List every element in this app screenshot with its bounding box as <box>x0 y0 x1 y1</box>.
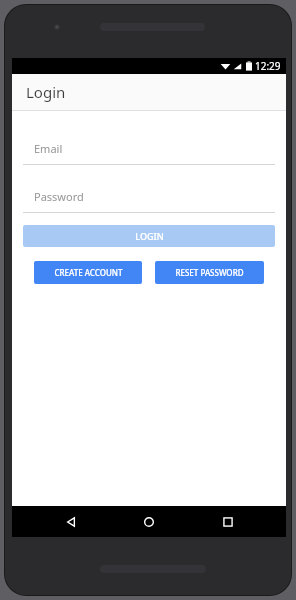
button[interactable]: CREATE ACCOUNT <box>34 261 142 284</box>
button[interactable]: Password <box>23 185 275 213</box>
button[interactable]: LOGIN <box>23 225 275 247</box>
button[interactable]: Home <box>129 506 169 537</box>
staticText: Password <box>34 189 84 204</box>
button[interactable]: RESET PASSWORD <box>155 261 264 284</box>
button[interactable]: Back <box>51 506 91 537</box>
button[interactable]: Email <box>23 137 275 165</box>
staticText: RESET PASSWORD <box>175 267 244 278</box>
button[interactable]: Recent apps <box>208 506 248 537</box>
staticText: LOGIN <box>135 230 164 242</box>
staticText: Email <box>34 141 63 156</box>
staticText: 12:29 <box>255 59 281 73</box>
staticText: CREATE ACCOUNT <box>54 267 123 278</box>
staticText: Login <box>26 82 66 102</box>
